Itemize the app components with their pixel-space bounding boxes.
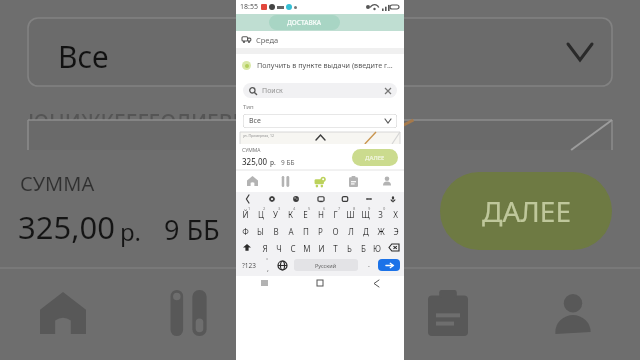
button[interactable]: 4 [284, 206, 297, 221]
staticText: Получить в пункте выдачи (введите г… [257, 60, 393, 70]
staticText: Г [333, 209, 338, 220]
button[interactable]: Cart [302, 170, 336, 192]
button[interactable]: Back [241, 192, 254, 205]
button[interactable]: Recents [236, 276, 292, 290]
button[interactable]: Orders [336, 170, 370, 192]
staticText: 4 [293, 206, 296, 211]
button[interactable]: ДАЛЕЕ [440, 172, 612, 250]
button[interactable]: Profile [370, 170, 404, 192]
button[interactable]: More [362, 192, 375, 205]
button[interactable]: Collapse [313, 133, 327, 142]
button[interactable]: И [315, 240, 327, 255]
button[interactable]: Среда [242, 31, 404, 48]
staticText: З [378, 209, 383, 220]
button[interactable]: 2 [254, 206, 267, 221]
staticText: Ч [276, 243, 282, 254]
staticText: ДОСТАВКА [287, 18, 322, 27]
button[interactable]: Все [243, 114, 397, 128]
button[interactable]: Р [314, 223, 327, 238]
staticText: 7 [338, 206, 341, 211]
button[interactable]: 7 [329, 206, 342, 221]
button[interactable]: Back [348, 276, 404, 290]
staticText: 2 [263, 206, 266, 211]
button[interactable]: 1 [238, 206, 252, 221]
button[interactable]: Clipboard [314, 192, 327, 205]
button[interactable]: Comma [260, 256, 274, 274]
button[interactable]: 3 [269, 206, 282, 221]
button[interactable]: Русский [294, 259, 358, 271]
staticText: ДАЛЕЕ [365, 154, 385, 162]
button[interactable]: Change language [274, 256, 290, 274]
button[interactable]: ДАЛЕЕ [352, 149, 398, 166]
button[interactable]: Home [236, 170, 269, 192]
button[interactable]: Stickers [289, 192, 302, 205]
button[interactable]: Б [357, 240, 369, 255]
button[interactable]: Voice input [386, 192, 399, 205]
button[interactable]: Э [389, 223, 402, 238]
staticText: 5 [308, 206, 311, 211]
button[interactable]: Ю [371, 240, 383, 255]
staticText: 6 [323, 206, 326, 211]
staticText: ул. Примерная, 12 [243, 133, 275, 138]
staticText: В [273, 226, 279, 237]
button[interactable]: Ф [238, 223, 252, 238]
button[interactable]: Ь [343, 240, 355, 255]
staticText: Ю [373, 243, 381, 254]
staticText: П [303, 226, 309, 237]
staticText: ?123 [242, 261, 256, 270]
staticText: С [290, 243, 296, 254]
staticText: ДАЛЕЕ [482, 192, 571, 230]
button[interactable]: Period [362, 256, 376, 274]
button[interactable]: Поиск [243, 83, 397, 98]
button[interactable]: А [284, 223, 297, 238]
button[interactable]: Shift [238, 240, 256, 255]
button[interactable]: Я [258, 240, 271, 255]
button[interactable]: Ы [254, 223, 267, 238]
button[interactable]: 5 [299, 206, 312, 221]
staticText: 325,00 [18, 206, 115, 248]
staticText: Й [242, 209, 249, 220]
button[interactable]: Х [389, 206, 402, 221]
button[interactable]: О [329, 223, 342, 238]
staticText: 8 [353, 206, 356, 211]
button[interactable]: 8 [344, 206, 357, 221]
button[interactable]: Settings [265, 192, 278, 205]
button[interactable]: Л [344, 223, 357, 238]
button[interactable]: Т [329, 240, 341, 255]
staticText: ° [266, 257, 269, 264]
staticText: О [332, 226, 339, 237]
button[interactable]: М [301, 240, 313, 255]
staticText: Т [333, 243, 338, 254]
staticText: Ф [242, 226, 249, 237]
staticText: р. [120, 215, 142, 248]
button[interactable]: 6 [314, 206, 327, 221]
staticText: А [288, 226, 294, 237]
button[interactable]: Send [378, 259, 400, 271]
button[interactable]: ДОСТАВКА [269, 15, 340, 30]
staticText: 9 [368, 206, 371, 211]
button[interactable]: Д [359, 223, 372, 238]
button[interactable]: Ж [374, 223, 387, 238]
button[interactable]: 9 [359, 206, 372, 221]
staticText: К [288, 209, 293, 220]
staticText: И [318, 243, 325, 254]
button[interactable]: Menu [269, 170, 302, 192]
button[interactable]: В [269, 223, 282, 238]
button[interactable]: С [287, 240, 299, 255]
staticText: 3 [278, 206, 281, 211]
staticText: Тип [243, 103, 254, 111]
button[interactable]: ?123 [238, 256, 260, 274]
staticText: Ш [346, 209, 355, 220]
button[interactable]: Ч [273, 240, 285, 255]
staticText: Д [363, 226, 369, 237]
button[interactable]: Получить в пункте выдачи (введите г… [242, 54, 398, 76]
button[interactable]: Translate [338, 192, 351, 205]
staticText: Щ [361, 209, 370, 220]
button[interactable]: Backspace [385, 240, 402, 255]
staticText: Ж [377, 226, 385, 237]
button[interactable]: Home [292, 276, 348, 290]
button[interactable]: П [299, 223, 312, 238]
button[interactable]: 0 [374, 206, 387, 221]
